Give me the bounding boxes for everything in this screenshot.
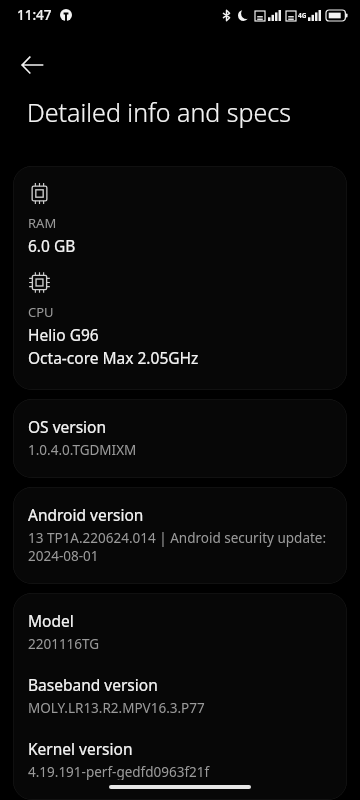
staticText: 11:47 [17, 6, 52, 24]
staticText: 1.0.4.0.TGDMIXM [28, 441, 137, 459]
staticText: Octa-core Max 2.05GHz [28, 347, 199, 368]
staticText: Kernel version [28, 738, 133, 759]
staticText: 2201116TG [28, 635, 100, 653]
staticText: Baseband version [28, 674, 158, 695]
staticText: 4.19.191-perf-gedfd0963f21f [28, 763, 210, 780]
staticText: Detailed info and specs [27, 95, 291, 129]
button[interactable]: RAM [13, 166, 347, 390]
button[interactable]: Android version [13, 487, 347, 584]
staticText: Model [28, 610, 74, 631]
button[interactable]: Model [13, 593, 347, 800]
button[interactable]: Back [9, 42, 55, 88]
staticText: 13 TP1A.220624.014 | Android security up… [28, 529, 327, 547]
staticText: MOLY.LR13.R2.MPV16.3.P77 [28, 699, 205, 717]
staticText: 4G [298, 11, 307, 20]
staticText: 2024-08-01 [28, 547, 99, 565]
staticText: Helio G96 [28, 324, 99, 345]
staticText: RAM [28, 214, 57, 232]
staticText: OS version [28, 416, 107, 437]
button[interactable]: OS version [13, 399, 347, 478]
staticText: Android version [28, 504, 144, 525]
staticText: CPU [28, 303, 54, 321]
staticText: 6.0 GB [28, 235, 76, 256]
